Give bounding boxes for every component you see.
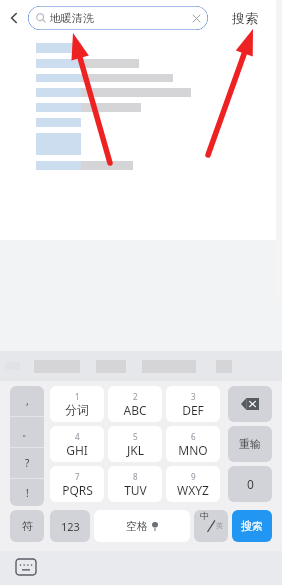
button[interactable]: ,	[10, 386, 44, 416]
staticText: 重输	[239, 437, 261, 451]
button[interactable]: 符	[10, 510, 44, 542]
staticText: 0	[247, 476, 254, 492]
button[interactable]: 重输	[228, 426, 272, 462]
staticText: 空格	[126, 519, 148, 533]
button[interactable]: 9	[166, 466, 220, 502]
button[interactable]: 3	[166, 386, 220, 422]
button[interactable]: Backspace	[228, 386, 272, 422]
staticText: !	[26, 486, 29, 500]
button[interactable]	[0, 130, 282, 158]
button[interactable]: 1	[50, 386, 104, 422]
staticText: 8	[133, 471, 138, 482]
staticText: 6	[191, 431, 196, 442]
button[interactable]	[0, 71, 282, 85]
staticText: 搜索	[241, 519, 263, 533]
staticText: 4	[75, 431, 80, 442]
staticText: 9	[191, 471, 196, 482]
staticText: 地暖清洗	[50, 11, 94, 25]
button[interactable]: 2	[108, 386, 162, 422]
staticText: ?	[25, 456, 30, 470]
button[interactable]: 123	[50, 510, 90, 542]
staticText: 2	[133, 391, 138, 402]
staticText: 1	[75, 391, 80, 402]
button[interactable]	[0, 100, 282, 115]
staticText: ABC	[123, 402, 147, 418]
staticText: ,	[26, 394, 29, 408]
button[interactable]: Back	[0, 0, 28, 36]
staticText: 3	[191, 391, 196, 402]
staticText: 分词	[65, 402, 89, 417]
staticText: 123	[61, 519, 80, 534]
button[interactable]: Clear	[190, 12, 202, 24]
button[interactable]: Keyboard	[16, 559, 36, 575]
button[interactable]: ?	[10, 448, 44, 478]
button[interactable]: 空格	[94, 510, 190, 542]
staticText: 英	[216, 521, 223, 530]
button[interactable]: !	[10, 479, 44, 506]
button[interactable]: 搜索	[232, 510, 272, 542]
button[interactable]: 6	[166, 426, 220, 462]
button[interactable]: 。	[10, 417, 44, 447]
staticText: 7	[75, 471, 80, 482]
button[interactable]: 5	[108, 426, 162, 462]
staticText: 。	[22, 426, 32, 439]
staticText: JKL	[127, 442, 144, 458]
button[interactable]	[0, 85, 282, 100]
button[interactable]: 4	[50, 426, 104, 462]
button[interactable]: 0	[228, 466, 272, 502]
button[interactable]	[0, 56, 282, 71]
staticText: 5	[133, 431, 138, 442]
staticText: 搜索	[232, 10, 258, 26]
button[interactable]	[0, 115, 282, 130]
button[interactable]: 8	[108, 466, 162, 502]
staticText: WXYZ	[177, 482, 209, 498]
staticText: PQRS	[62, 482, 93, 498]
staticText: MNO	[178, 442, 208, 458]
staticText: 符	[22, 519, 33, 533]
button[interactable]: 7	[50, 466, 104, 502]
staticText: DEF	[182, 402, 204, 418]
button[interactable]: 搜索	[208, 0, 282, 36]
button[interactable]	[0, 158, 282, 173]
staticText: TUV	[124, 482, 147, 498]
button[interactable]: 地暖清洗	[28, 6, 208, 30]
staticText: 中	[200, 510, 209, 521]
button[interactable]	[0, 40, 282, 56]
button[interactable]: 中	[194, 510, 228, 542]
staticText: GHI	[66, 442, 88, 458]
